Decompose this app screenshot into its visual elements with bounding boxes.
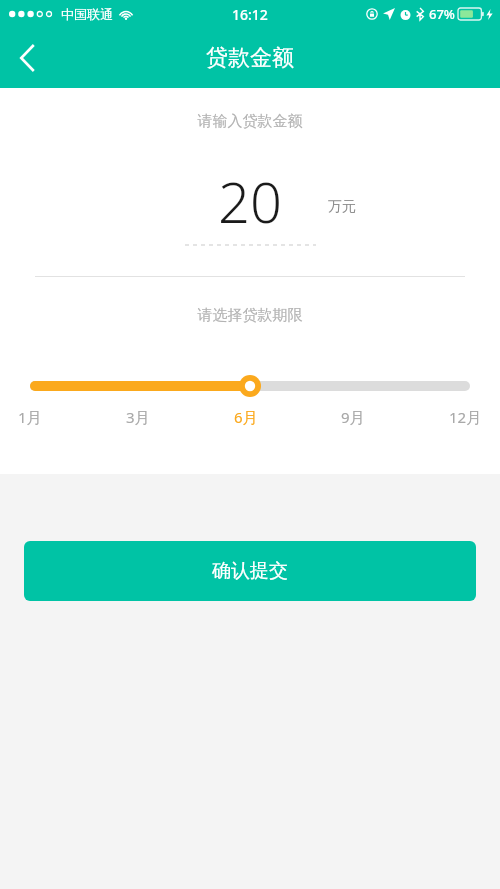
staticText: 6月	[234, 407, 258, 427]
staticText: 中国联通	[61, 6, 113, 22]
staticText: 20	[218, 163, 282, 227]
staticText: 1月	[18, 407, 42, 427]
staticText: 确认提交	[212, 559, 288, 583]
staticText: 67%	[429, 5, 455, 23]
staticText: 9月	[341, 407, 365, 427]
button[interactable]: 确认提交	[24, 541, 476, 601]
button[interactable]: Back	[0, 31, 54, 85]
staticText: 3月	[126, 407, 150, 427]
staticText: 16:12	[232, 5, 268, 24]
button[interactable]: Loan term slider	[0, 373, 500, 433]
staticText: 请选择贷款期限	[0, 306, 500, 325]
staticText: 12月	[449, 407, 482, 427]
staticText: 贷款金额	[206, 44, 294, 72]
staticText: 请输入贷款金额	[0, 112, 500, 131]
staticText: 万元	[328, 198, 356, 216]
